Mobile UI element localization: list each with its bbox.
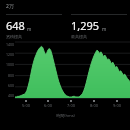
staticText: 2万: [6, 3, 14, 10]
staticText: 9:00: [113, 103, 121, 108]
staticText: 最高標高: [71, 34, 87, 39]
staticText: 1400: [5, 42, 14, 47]
button[interactable]: 1400: [0, 42, 130, 98]
staticText: m: [102, 26, 107, 32]
staticText: 時間(hms): [56, 113, 75, 118]
staticText: 800: [7, 73, 14, 78]
staticText: 累積標高: [6, 34, 22, 39]
button[interactable]: 648: [0, 14, 65, 39]
staticText: 400: [7, 93, 14, 98]
staticText: 600: [7, 83, 14, 88]
staticText: 1,295: [71, 18, 100, 33]
staticText: 1000: [5, 62, 14, 67]
staticText: 648: [6, 18, 25, 33]
staticText: m: [27, 26, 32, 32]
staticText: 8:00: [90, 103, 98, 108]
staticText: 1200: [5, 52, 14, 57]
staticText: 6:00: [44, 103, 52, 108]
button[interactable]: 1,295: [65, 14, 130, 39]
staticText: 5:00: [22, 103, 30, 108]
staticText: 7:00: [67, 103, 75, 108]
